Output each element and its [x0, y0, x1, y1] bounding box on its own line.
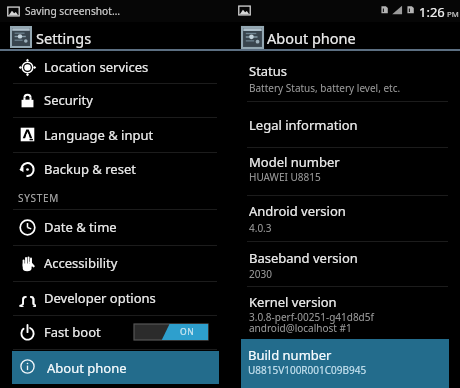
staticText: 2030: [249, 267, 272, 281]
button[interactable]: Accessibility: [0, 245, 219, 281]
staticText: Saving screenshot…: [25, 4, 120, 18]
staticText: Fast boot: [44, 323, 101, 341]
staticText: { }: [19, 290, 36, 307]
button[interactable]: Baseband version: [244, 241, 448, 286]
button[interactable]: Android version: [244, 195, 448, 241]
staticText: Security: [44, 91, 93, 109]
staticText: Legal information: [249, 116, 358, 134]
button[interactable]: Fast boot toggle: [134, 324, 208, 340]
staticText: Backup & reset: [44, 160, 136, 178]
staticText: SYSTEM: [18, 191, 60, 205]
staticText: 4.0.3: [249, 221, 272, 235]
staticText: U8815V100R001C09B945: [248, 363, 367, 377]
staticText: Status: [249, 62, 288, 80]
button[interactable]: Language & input: [0, 117, 219, 152]
staticText: Location services: [44, 58, 149, 76]
staticText: Developer options: [44, 289, 156, 307]
button[interactable]: Location services: [0, 51, 219, 83]
staticText: Language & input: [44, 126, 154, 144]
staticText: Build number: [248, 346, 332, 364]
button[interactable]: Legal information: [244, 101, 448, 147]
button[interactable]: About phone: [12, 351, 219, 384]
staticText: Battery Status, battery level, etc.: [249, 81, 401, 95]
button[interactable]: Backup & reset: [0, 152, 219, 186]
staticText: Android version: [249, 202, 346, 220]
staticText: Accessibility: [44, 254, 118, 272]
staticText: About phone: [267, 28, 356, 48]
staticText: Kernel version: [249, 293, 337, 311]
staticText: Model number: [249, 153, 340, 171]
button[interactable]: Security: [0, 83, 219, 117]
staticText: About phone: [47, 359, 127, 377]
staticText: ON: [180, 326, 195, 338]
staticText: HUAWEI U8815: [249, 170, 321, 184]
staticText: PM: [447, 9, 459, 20]
button[interactable]: { }: [0, 281, 219, 315]
button[interactable]: Model number: [244, 147, 448, 195]
button[interactable]: Date & time: [0, 209, 219, 245]
staticText: Baseband version: [249, 249, 358, 267]
button[interactable]: Fast boot: [0, 315, 219, 349]
button[interactable]: Build number: [241, 339, 449, 388]
button[interactable]: Status: [244, 53, 448, 101]
button[interactable]: Kernel version: [244, 286, 448, 339]
staticText: Settings: [36, 28, 92, 48]
staticText: 1:26: [419, 3, 445, 21]
staticText: 3.0.8-perf-00251-g41d8d5f android@localh…: [249, 310, 374, 335]
staticText: Date & time: [44, 218, 117, 236]
